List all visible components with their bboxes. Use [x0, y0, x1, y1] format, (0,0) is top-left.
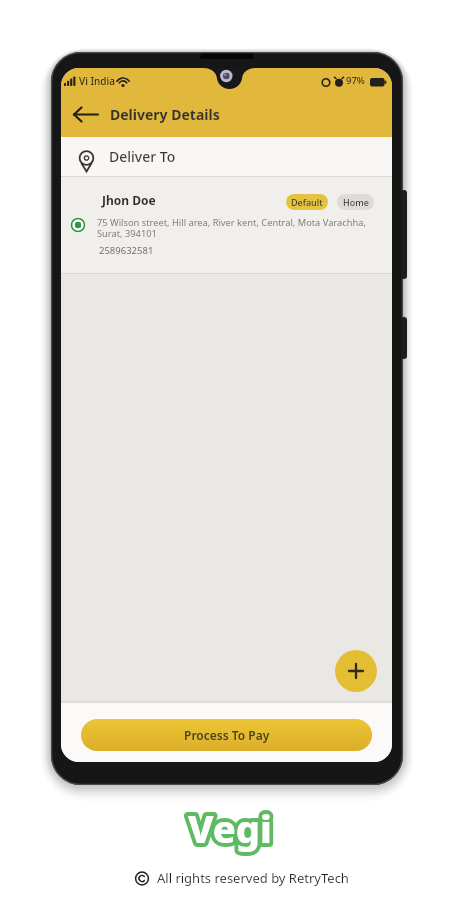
button[interactable]: Home: [337, 194, 374, 210]
staticText: Vegi: [188, 802, 272, 854]
staticText: 97%: [346, 74, 365, 87]
button[interactable]: [335, 650, 377, 692]
button[interactable]: [67, 100, 105, 130]
staticText: 2589632581: [99, 244, 154, 257]
staticText: Surat, 394101: [97, 227, 157, 240]
button[interactable]: Deliver To: [61, 137, 392, 176]
button[interactable]: Process To Pay: [81, 719, 372, 751]
staticText: Delivery Details: [110, 105, 220, 124]
button[interactable]: Default: [286, 194, 328, 210]
staticText: Jhon Doe: [102, 192, 156, 208]
staticText: Vegi: [188, 802, 272, 854]
staticText: Default: [291, 196, 323, 208]
staticText: Home: [343, 196, 369, 208]
staticText: Vi India: [79, 74, 115, 88]
staticText: All rights reserved by RetryTech: [157, 869, 349, 887]
staticText: 75 Wilson street, Hill area, River kent,…: [97, 216, 366, 229]
staticText: Deliver To: [109, 147, 176, 166]
button[interactable]: [61, 177, 392, 273]
staticText: Process To Pay: [184, 727, 270, 743]
